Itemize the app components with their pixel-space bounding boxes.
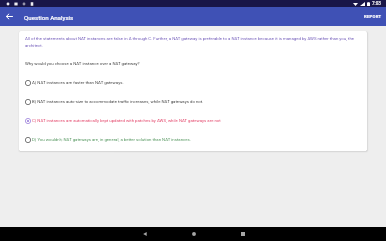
button[interactable]: B) NAT instances auto-size to accommodat… (19, 92, 367, 111)
staticText: 7:03 (372, 1, 381, 6)
button[interactable]: Recent apps (218, 227, 267, 241)
button[interactable]: C) NAT instances are automatically kept … (19, 111, 367, 130)
button[interactable]: REPORT (358, 7, 386, 26)
button[interactable]: D) You wouldn't; NAT gateways are, in ge… (19, 130, 367, 149)
button[interactable]: Navigate up (0, 7, 19, 26)
staticText: B) NAT instances auto-size to accommodat… (32, 99, 204, 104)
button[interactable]: Home (169, 227, 218, 241)
button[interactable]: Back (120, 227, 169, 241)
staticText: C) NAT instances are automatically kept … (32, 118, 221, 123)
staticText: All of the statements about NAT instance… (25, 36, 361, 48)
staticText: A) NAT instances are faster than NAT gat… (32, 80, 124, 85)
staticText: D) You wouldn't; NAT gateways are, in ge… (32, 137, 191, 142)
button[interactable]: A) NAT instances are faster than NAT gat… (19, 73, 367, 92)
staticText: Why would you choose a NAT instance over… (25, 61, 140, 66)
staticText: Question Analysis (24, 14, 74, 21)
staticText: REPORT (364, 14, 382, 19)
